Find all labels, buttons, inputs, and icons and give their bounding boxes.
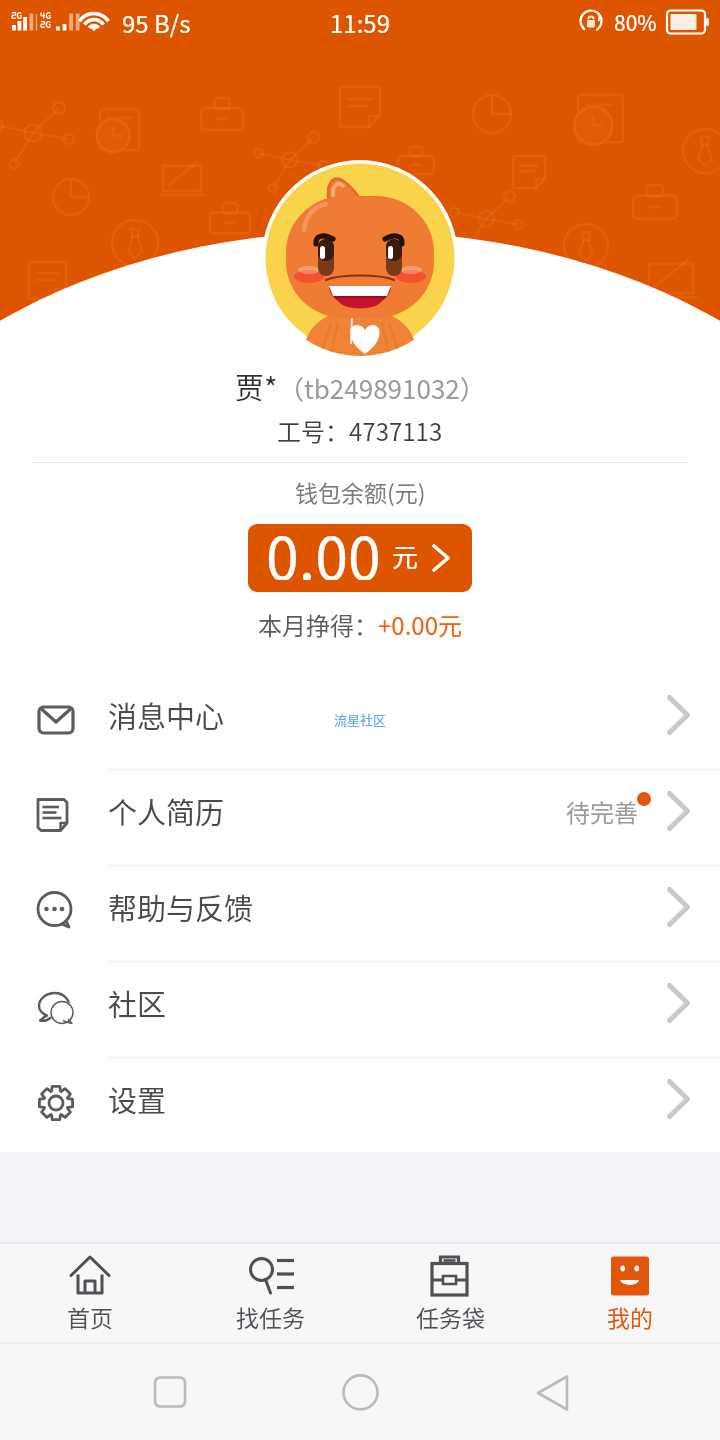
staticText: 0.00 (266, 524, 381, 580)
button[interactable]: 0.00 (248, 524, 472, 592)
staticText: 帮助与反馈 (108, 886, 254, 928)
staticText: 元 (392, 537, 419, 575)
staticText: 消息中心 (108, 694, 225, 736)
staticText: +0.00元 (378, 607, 462, 642)
button[interactable]: 社区 (0, 962, 720, 1058)
staticText: 设置 (108, 1078, 167, 1120)
staticText: 我的 (607, 1300, 653, 1333)
button[interactable]: 首页 (0, 1243, 180, 1343)
staticText: 本月挣得： (258, 607, 378, 642)
button[interactable]: 任务袋 (360, 1243, 540, 1343)
staticText: （tb249891032） (278, 369, 486, 407)
button[interactable]: Recent apps (125, 1343, 215, 1440)
staticText: 钱包余额(元) (295, 475, 426, 508)
staticText: 80% (614, 7, 657, 37)
staticText: 首页 (67, 1300, 113, 1333)
staticText: 找任务 (236, 1300, 305, 1333)
button[interactable]: 我的 (540, 1243, 720, 1343)
button[interactable]: Back (508, 1343, 598, 1440)
button[interactable]: 个人简历 (0, 770, 720, 866)
staticText: 待完善 (566, 794, 638, 829)
staticText: 个人简历 (108, 790, 225, 832)
button[interactable]: Profile avatar (262, 160, 458, 356)
button[interactable]: 帮助与反馈 (0, 866, 720, 962)
staticText: 流星社区 (334, 710, 387, 729)
button[interactable]: Home (315, 1343, 405, 1440)
staticText: 11:59 (330, 5, 390, 40)
other: Rotation locked (579, 9, 605, 35)
button[interactable]: 消息中心 (0, 674, 720, 770)
staticText: 贾* (235, 365, 278, 407)
staticText: 工号：4737113 (277, 413, 443, 448)
staticText: 95 B/s (122, 5, 191, 40)
staticText: 任务袋 (416, 1300, 485, 1333)
button[interactable]: 设置 (0, 1058, 720, 1154)
staticText: 社区 (108, 982, 167, 1024)
button[interactable]: 找任务 (180, 1243, 360, 1343)
